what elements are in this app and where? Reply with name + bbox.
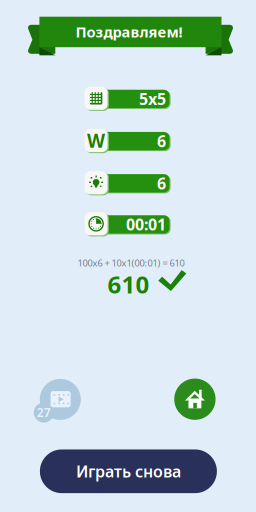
button[interactable]: Home: [171, 375, 219, 423]
staticText: 100x6 + 10x1(00:01) = 610: [77, 257, 184, 269]
staticText: 27: [37, 404, 51, 420]
button[interactable]: Играть снова: [40, 449, 217, 493]
staticText: 5x5: [139, 88, 166, 109]
staticText: 610: [107, 268, 149, 300]
button[interactable]: Watch video for extra tries: [30, 378, 84, 428]
staticText: 6: [157, 130, 166, 152]
staticText: Играть снова: [76, 461, 181, 482]
staticText: W: [87, 128, 105, 153]
staticText: 6: [157, 173, 166, 194]
staticText: 00:01: [126, 214, 166, 235]
staticText: Поздравляем!: [76, 22, 183, 42]
